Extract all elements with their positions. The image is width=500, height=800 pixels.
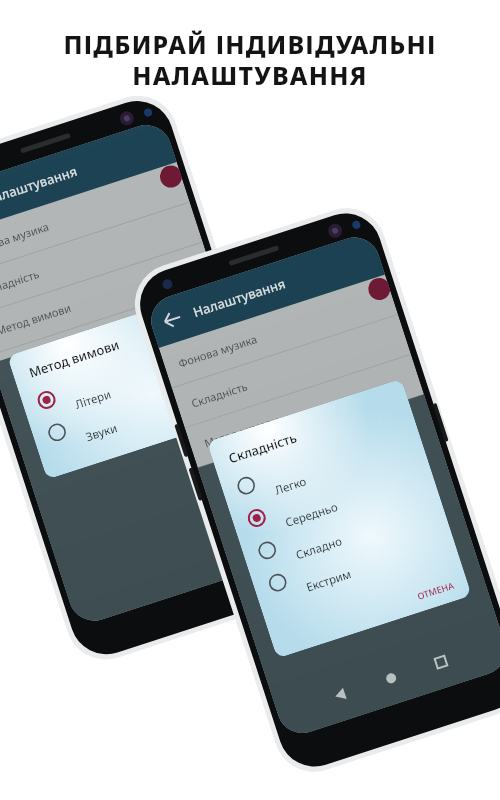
- button[interactable]: Individual settings promo: [0, 0, 500, 800]
